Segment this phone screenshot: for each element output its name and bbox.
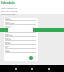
staticText: End time — [5, 29, 11, 31]
staticText: Kitchen — [5, 42, 11, 44]
staticText: Living room — [5, 22, 15, 24]
staticText: Schedule — [1, 1, 15, 5]
staticText: Evening — [5, 18, 12, 20]
staticText: Start time — [5, 25, 12, 27]
staticText: Lights — [5, 50, 10, 52]
staticText: Notify — [5, 45, 10, 47]
staticText: On — [5, 46, 8, 48]
staticText: Rooms — [5, 41, 10, 43]
staticText: Label — [5, 49, 9, 51]
staticText: your devices to turn on and off automati… — [1, 7, 18, 16]
staticText: Name — [5, 17, 10, 19]
staticText: 18:30 — [5, 26, 10, 28]
staticText: 23:00 — [5, 30, 10, 32]
staticText: Device — [5, 21, 10, 23]
button[interactable]: Add schedule — [29, 56, 33, 60]
staticText: Every day — [5, 34, 13, 36]
staticText: Repeat — [5, 33, 10, 35]
staticText: Action — [5, 37, 10, 39]
staticText: Turn on — [5, 38, 12, 40]
